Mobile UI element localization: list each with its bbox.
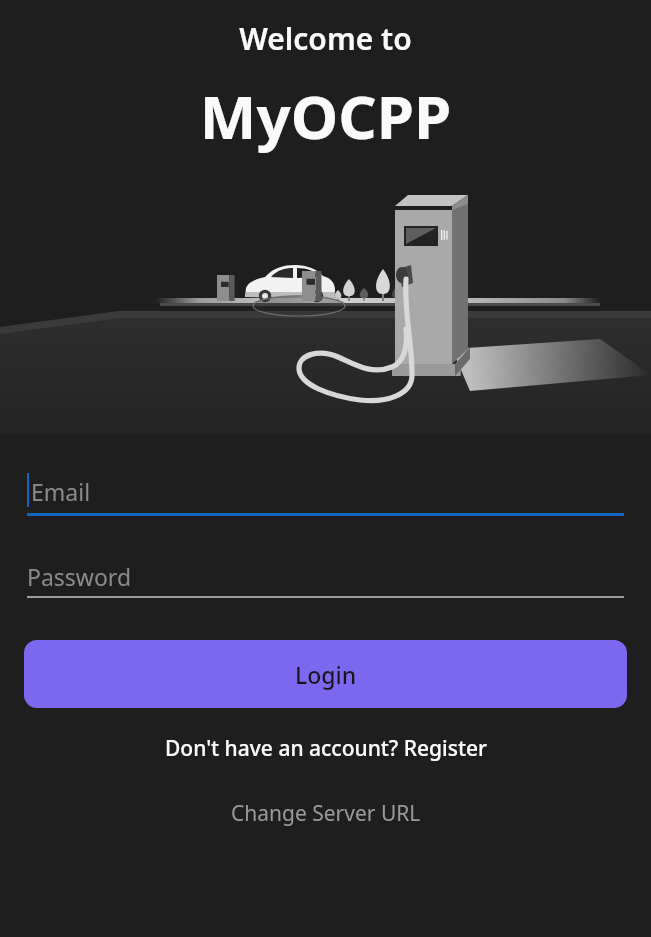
staticText: Don't have an account? Register [165, 734, 487, 763]
button[interactable]: Change Server URL [0, 791, 651, 836]
button[interactable]: Don't have an account? Register [0, 724, 651, 773]
staticText: Email [31, 476, 91, 507]
button[interactable]: Login [24, 640, 627, 708]
button[interactable]: Password [27, 556, 624, 598]
staticText: Login [295, 659, 357, 690]
staticText: Change Server URL [231, 799, 421, 828]
staticText: Password [27, 561, 132, 592]
staticText: Welcome to [0, 18, 651, 59]
button[interactable]: Email [27, 469, 624, 516]
staticText: MyOCPP [0, 75, 651, 157]
